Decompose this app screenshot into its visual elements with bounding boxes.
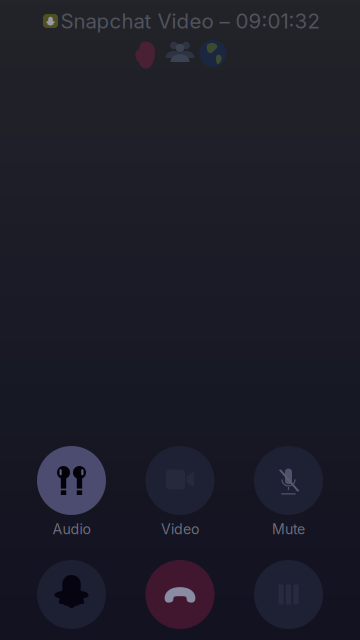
staticText: Snapchat Video – 09:01:32 <box>60 9 319 33</box>
button[interactable]: Mute <box>0 0 360 640</box>
staticText: Audio <box>52 520 90 537</box>
button[interactable]: Effects <box>0 0 360 640</box>
button[interactable]: Snapchat <box>0 0 360 640</box>
button[interactable]: End call <box>0 0 360 640</box>
button[interactable]: Video <box>0 0 360 640</box>
staticText: Mute <box>272 520 305 537</box>
button[interactable]: Audio <box>0 0 360 640</box>
staticText: Video <box>161 520 199 537</box>
